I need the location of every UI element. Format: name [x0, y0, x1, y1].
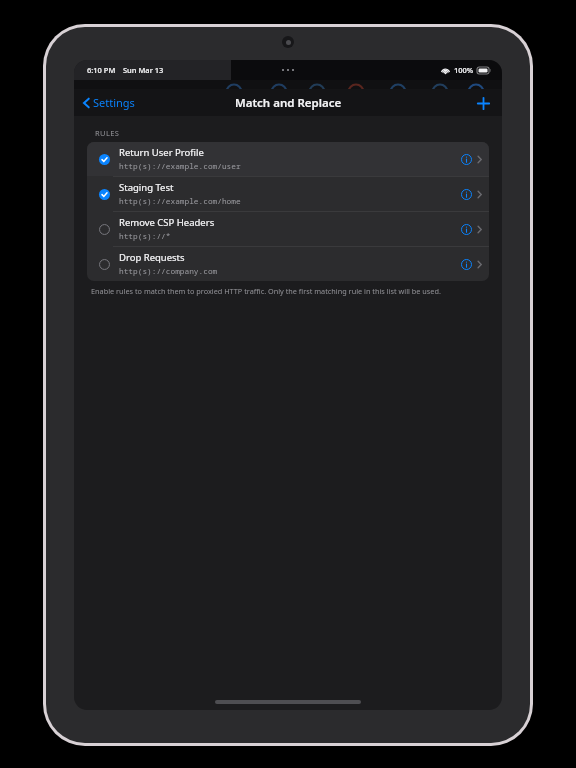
staticText: Settings [93, 95, 135, 110]
staticText: Drop Requests [119, 251, 185, 264]
button[interactable]: Rule disabled [95, 220, 113, 238]
button[interactable]: Rule info [457, 220, 475, 238]
button[interactable]: Settings [83, 89, 135, 116]
button[interactable]: Add rule [472, 92, 494, 114]
button[interactable]: Rule enabled [95, 185, 113, 203]
button[interactable]: Rule disabled [95, 255, 113, 273]
button[interactable]: Rule enabled [87, 142, 489, 176]
staticText: Sun Mar 13 [123, 65, 164, 75]
button[interactable]: Rule info [457, 185, 475, 203]
staticText: 100% [454, 65, 474, 75]
staticText: http(s)://example.com/home [119, 196, 241, 207]
staticText: Staging Test [119, 181, 174, 194]
staticText: Enable rules to match them to proxied HT… [91, 286, 441, 296]
staticText: 6:10 PM [87, 65, 116, 75]
staticText: RULES [95, 128, 120, 138]
button[interactable]: Rule enabled [95, 150, 113, 168]
staticText: http(s)://* [119, 231, 171, 242]
button[interactable]: Rule info [457, 150, 475, 168]
button[interactable]: Rule disabled [87, 212, 489, 246]
button[interactable]: Rule disabled [87, 247, 489, 281]
button[interactable]: Rule enabled [87, 177, 489, 211]
staticText: http(s)://company.com [119, 266, 218, 277]
staticText: http(s)://example.com/user [119, 161, 241, 172]
staticText: Match and Replace [235, 95, 342, 111]
button[interactable]: Rule info [457, 255, 475, 273]
staticText: Return User Profile [119, 146, 204, 159]
staticText: Remove CSP Headers [119, 216, 215, 229]
